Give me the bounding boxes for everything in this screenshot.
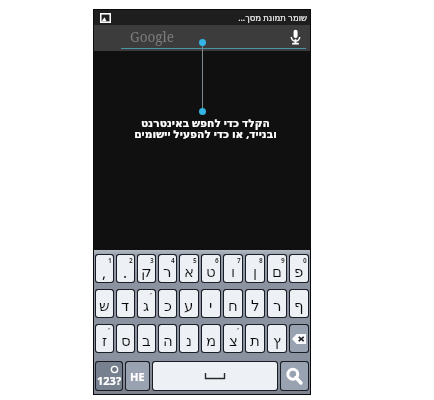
staticText: ר xyxy=(163,263,172,280)
button[interactable]: ש xyxy=(96,290,113,317)
staticText: ץ xyxy=(273,332,282,349)
button[interactable]: 9 xyxy=(268,255,286,282)
button[interactable]: 3 xyxy=(138,255,155,282)
staticText: Google xyxy=(130,28,174,46)
staticText: ובנייד, או כדי להפעיל יישומים xyxy=(134,127,277,142)
staticText: ד xyxy=(121,297,130,314)
button[interactable]: 8 xyxy=(246,255,264,282)
button[interactable]: Search xyxy=(281,362,308,390)
button[interactable]: נ xyxy=(180,325,198,352)
staticText: ת xyxy=(250,332,260,349)
button[interactable]: ׳ xyxy=(138,290,155,317)
staticText: ר xyxy=(273,297,282,314)
button[interactable]: Backspace xyxy=(290,325,308,352)
button[interactable]: ח xyxy=(224,290,242,317)
staticText: HE xyxy=(130,369,145,384)
staticText: , xyxy=(102,262,107,282)
button[interactable]: ץ xyxy=(268,325,286,352)
staticText: 4 xyxy=(171,256,175,265)
staticText: כ xyxy=(164,297,172,314)
staticText: ע xyxy=(184,297,194,314)
staticText: ף xyxy=(294,297,304,314)
staticText: פ xyxy=(294,263,304,280)
staticText: 6 xyxy=(215,256,219,265)
staticText: נ xyxy=(186,332,193,349)
staticText: ׳ xyxy=(149,290,153,300)
button[interactable]: ל xyxy=(246,290,264,317)
staticText: ה xyxy=(163,332,173,349)
staticText: 2 xyxy=(129,256,133,265)
button[interactable]: Voice search xyxy=(284,27,306,47)
button[interactable]: ׳ xyxy=(96,325,113,352)
button[interactable]: 5 xyxy=(180,255,198,282)
button[interactable]: 7 xyxy=(224,255,242,282)
staticText: ן xyxy=(253,263,258,280)
button[interactable]: ד xyxy=(117,290,134,317)
staticText: ׳ xyxy=(236,325,240,335)
staticText: ו xyxy=(231,263,236,280)
staticText: ס xyxy=(121,332,131,349)
staticText: ק xyxy=(141,263,152,280)
staticText: צ xyxy=(229,332,238,349)
staticText: א xyxy=(184,263,195,280)
staticText: 7 xyxy=(237,256,241,265)
button[interactable]: ב xyxy=(138,325,155,352)
button[interactable]: Space xyxy=(153,362,277,390)
staticText: 9 xyxy=(281,256,285,265)
button[interactable]: כ xyxy=(159,290,176,317)
button[interactable]: ה xyxy=(159,325,176,352)
button[interactable]: ׳ xyxy=(224,325,242,352)
staticText: 0 xyxy=(303,256,307,265)
staticText: ט xyxy=(206,263,216,280)
staticText: ח xyxy=(228,297,238,314)
staticText: ז xyxy=(102,332,108,349)
button[interactable]: ת xyxy=(246,325,264,352)
button[interactable]: 1 xyxy=(96,255,113,282)
staticText: 5 xyxy=(193,256,197,265)
button[interactable]: ס xyxy=(117,325,134,352)
staticText: מ xyxy=(206,332,217,349)
staticText: 1 xyxy=(108,256,112,265)
button[interactable]: י xyxy=(202,290,220,317)
staticText: 8 xyxy=(259,256,263,265)
button[interactable]: HE xyxy=(126,362,149,390)
staticText: ש xyxy=(99,297,110,314)
button[interactable]: מ xyxy=(202,325,220,352)
button[interactable]: 123? xyxy=(96,362,122,390)
button[interactable]: ע xyxy=(180,290,198,317)
staticText: הקלד כדי לחפש באינטרנט xyxy=(141,116,270,131)
staticText: ב xyxy=(142,332,151,349)
staticText: ׳ xyxy=(107,325,111,335)
staticText: 123? xyxy=(97,373,122,388)
staticText: . xyxy=(123,262,128,282)
staticText: ג xyxy=(143,297,150,314)
button[interactable]: 4 xyxy=(159,255,176,282)
button[interactable]: ר xyxy=(268,290,286,317)
button[interactable]: 6 xyxy=(202,255,220,282)
staticText: ל xyxy=(251,297,260,314)
staticText: 3 xyxy=(150,256,154,265)
staticText: ם xyxy=(272,263,282,280)
button[interactable]: 0 xyxy=(290,255,308,282)
staticText: י xyxy=(209,297,213,314)
button[interactable]: ף xyxy=(290,290,308,317)
button[interactable]: 2 xyxy=(117,255,134,282)
staticText: שומר תמונת מסך... xyxy=(238,12,307,24)
